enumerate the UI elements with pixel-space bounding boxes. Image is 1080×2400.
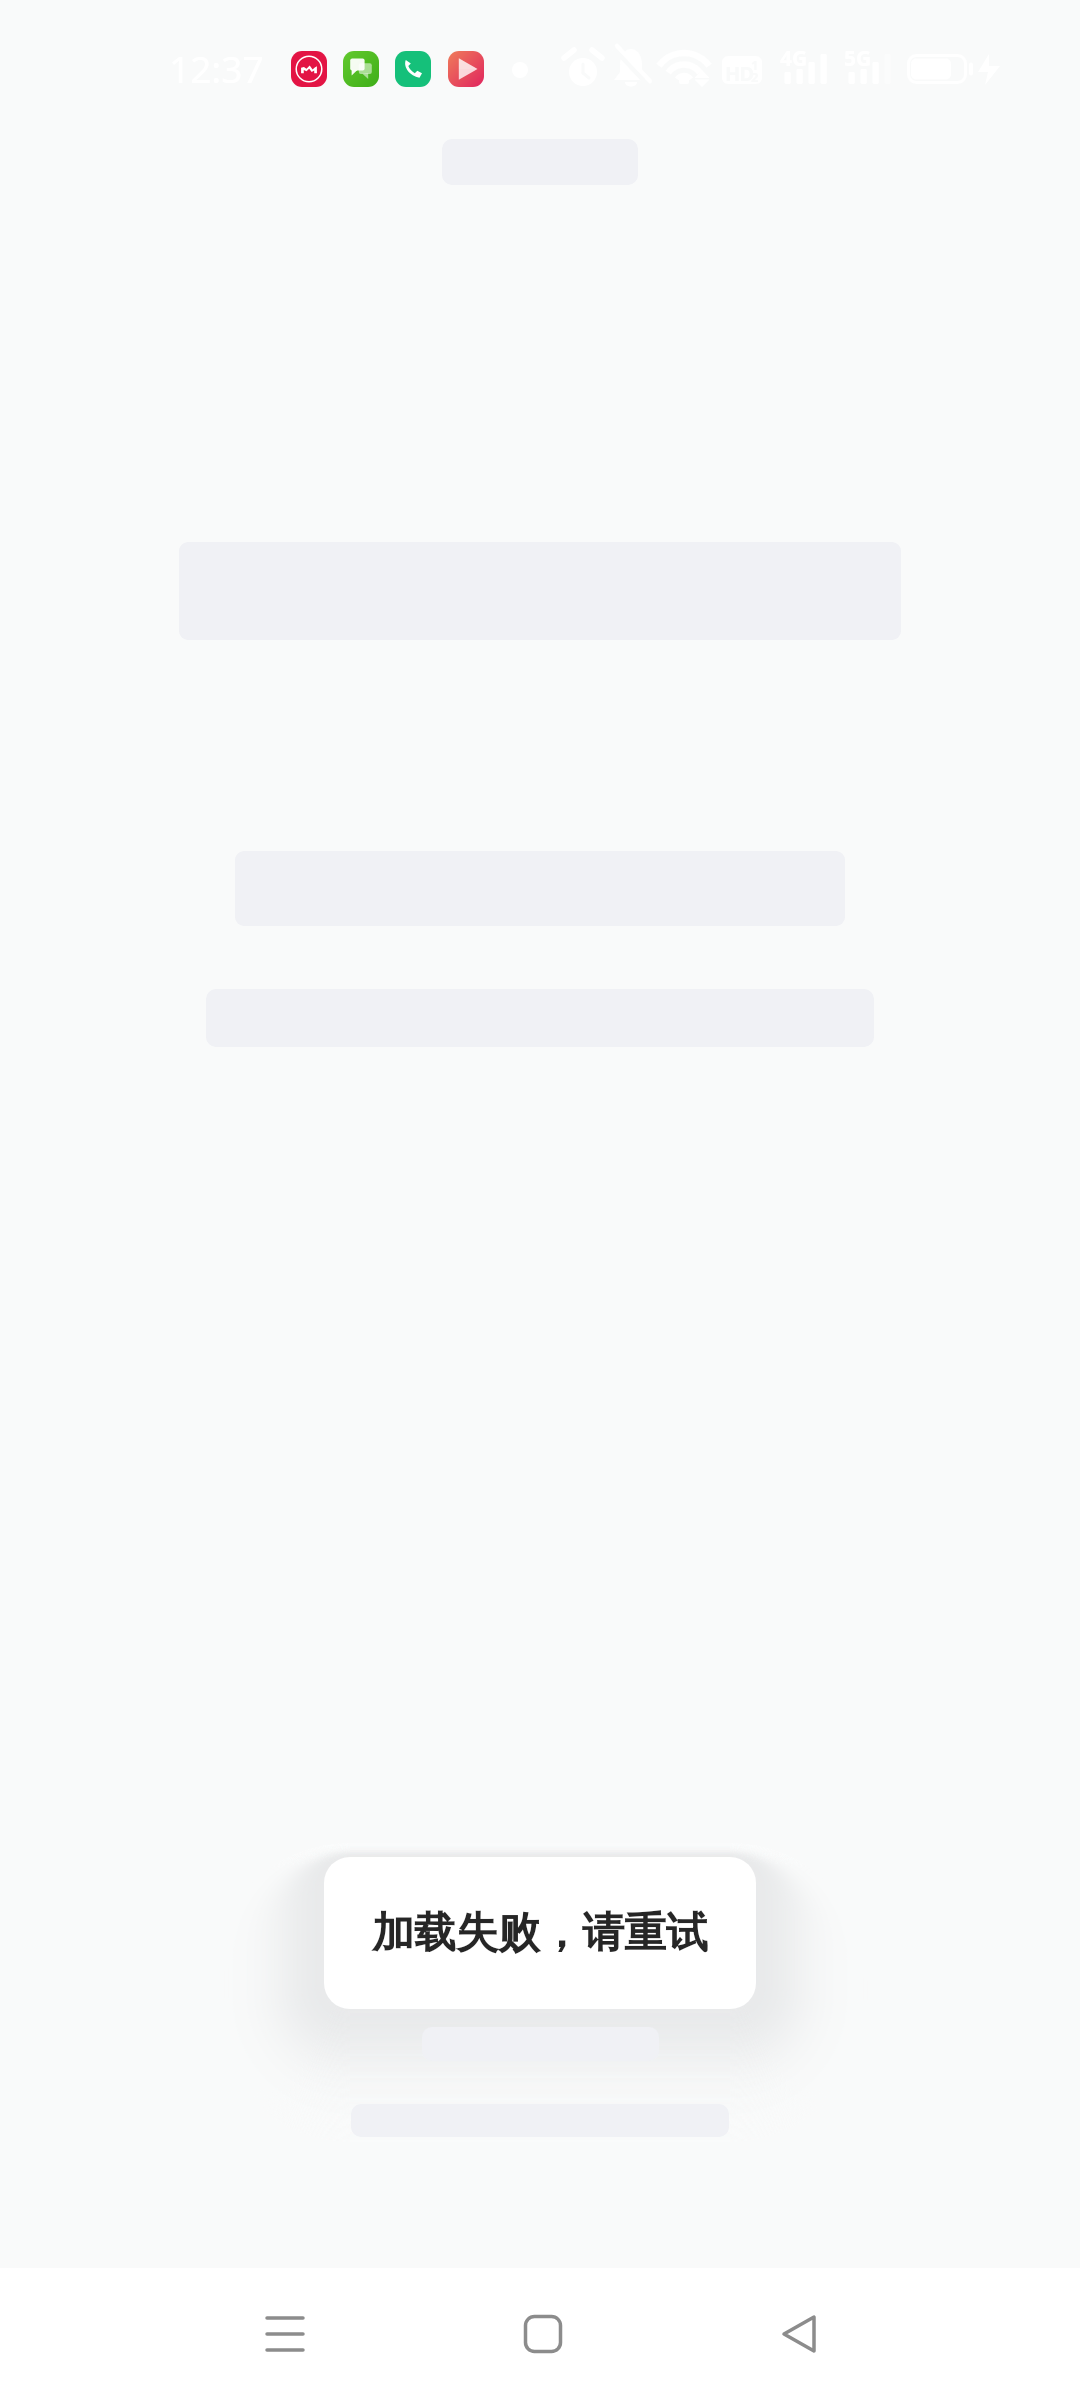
button[interactable]: Recent apps — [225, 2268, 345, 2400]
button[interactable]: Music notification — [291, 51, 327, 87]
staticText: 加载失败，请重试 — [372, 1907, 708, 1960]
button[interactable]: 加载失败，请重试 — [324, 1857, 756, 2009]
button[interactable]: Back — [741, 2268, 861, 2400]
button[interactable]: Video notification — [448, 51, 484, 87]
button[interactable]: Phone notification — [395, 51, 431, 87]
button[interactable]: Home — [483, 2268, 603, 2400]
button[interactable]: Messages notification — [343, 51, 379, 87]
